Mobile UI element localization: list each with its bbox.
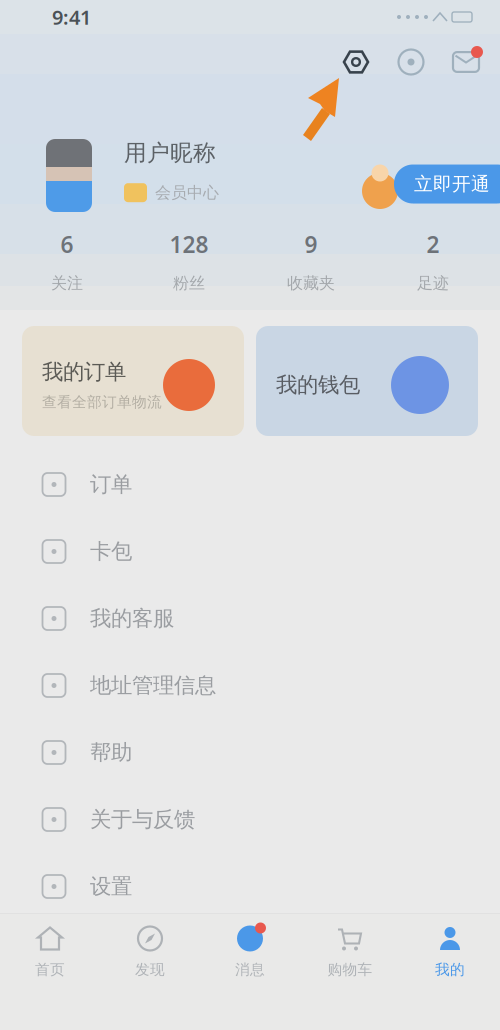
- button[interactable]: 2: [372, 218, 494, 304]
- staticText: 查看全部订单物流: [42, 393, 162, 411]
- staticText: 帮助: [90, 739, 132, 766]
- staticText: 地址管理信息: [90, 672, 216, 699]
- staticText: 订单: [90, 471, 132, 498]
- button[interactable]: 消息: [200, 914, 300, 989]
- staticText: 卡包: [90, 538, 132, 565]
- button[interactable]: 首页: [0, 914, 100, 989]
- staticText: 粉丝: [173, 273, 205, 293]
- staticText: 会员中心: [155, 183, 219, 202]
- staticText: 9: [304, 229, 317, 259]
- button[interactable]: Join membership: [358, 156, 500, 212]
- staticText: 关于与反馈: [90, 806, 195, 833]
- staticText: 我的订单: [42, 359, 126, 385]
- staticText: 发现: [135, 960, 165, 978]
- staticText: 我的钱包: [276, 372, 360, 398]
- button[interactable]: 设置: [0, 853, 500, 920]
- button[interactable]: 我的客服: [0, 585, 500, 652]
- staticText: 我的客服: [90, 605, 174, 632]
- staticText: 消息: [235, 960, 265, 978]
- button[interactable]: 订单: [0, 451, 500, 518]
- button[interactable]: 9: [250, 218, 372, 304]
- staticText: 我的: [435, 960, 465, 978]
- button[interactable]: 购物车: [300, 914, 400, 989]
- staticText: 首页: [35, 960, 65, 978]
- button[interactable]: 地址管理信息: [0, 652, 500, 719]
- button[interactable]: 用户昵称: [0, 96, 219, 212]
- button[interactable]: 我的订单: [22, 326, 244, 436]
- button[interactable]: Messages: [443, 39, 489, 85]
- button[interactable]: 我的: [400, 914, 500, 989]
- staticText: 9:41: [52, 4, 91, 30]
- staticText: 设置: [90, 873, 132, 900]
- button[interactable]: 卡包: [0, 518, 500, 585]
- staticText: 收藏夹: [287, 273, 335, 293]
- button[interactable]: Settings: [333, 39, 379, 85]
- button[interactable]: 帮助: [0, 719, 500, 786]
- button[interactable]: Scan: [388, 39, 434, 85]
- staticText: 6: [60, 229, 73, 259]
- staticText: 立即开通: [414, 172, 490, 195]
- button[interactable]: 128: [128, 218, 250, 304]
- staticText: 购物车: [327, 960, 372, 978]
- button[interactable]: 我的钱包: [256, 326, 478, 436]
- staticText: 关注: [51, 273, 83, 293]
- button[interactable]: 关于与反馈: [0, 786, 500, 853]
- staticText: 2: [426, 229, 439, 259]
- button[interactable]: 发现: [100, 914, 200, 989]
- staticText: 用户昵称: [124, 139, 216, 167]
- staticText: 足迹: [417, 273, 449, 293]
- button[interactable]: 6: [6, 218, 128, 304]
- staticText: 128: [169, 229, 208, 259]
